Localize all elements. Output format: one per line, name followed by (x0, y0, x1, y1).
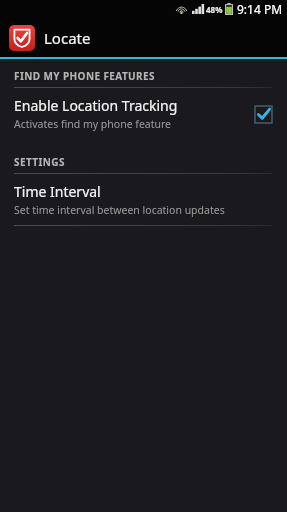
staticText: 9:14 PM (237, 1, 283, 17)
staticText: FIND MY PHONE FEATURES (14, 69, 155, 83)
staticText: Enable Location Tracking (14, 96, 178, 115)
staticText: Set time interval between location updat… (14, 203, 225, 217)
staticText: Time Interval (14, 182, 101, 201)
staticText: Locate (44, 28, 91, 48)
staticText: SETTINGS (14, 155, 65, 169)
button[interactable]: Enable Location Tracking (0, 88, 287, 139)
staticText: 48% (206, 4, 223, 15)
button[interactable]: Time Interval (0, 174, 287, 225)
button[interactable]: Locate (0, 18, 287, 57)
staticText: Activates find my phone feature (14, 117, 172, 131)
button[interactable]: Enable Location Tracking toggle (253, 104, 273, 124)
